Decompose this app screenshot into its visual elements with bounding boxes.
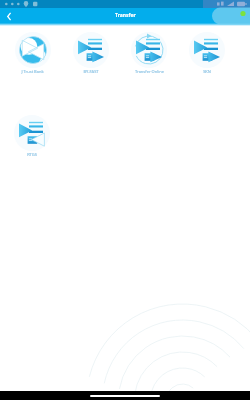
staticText: Transfer [115,12,136,19]
staticText: SKN [203,69,211,74]
staticText: Transfer Online [135,69,164,74]
button[interactable]: J Trust Bank [3,32,62,74]
staticText: RTGS [27,152,37,157]
button[interactable]: Transfer Online [120,32,178,74]
button[interactable]: RTGS [3,115,61,157]
staticText: J Trust Bank [21,69,44,74]
button[interactable]: BY-FAST [62,32,120,74]
button[interactable]: Back [2,9,16,23]
staticText: BY-FAST [83,69,99,74]
button[interactable]: SKN [178,32,236,74]
